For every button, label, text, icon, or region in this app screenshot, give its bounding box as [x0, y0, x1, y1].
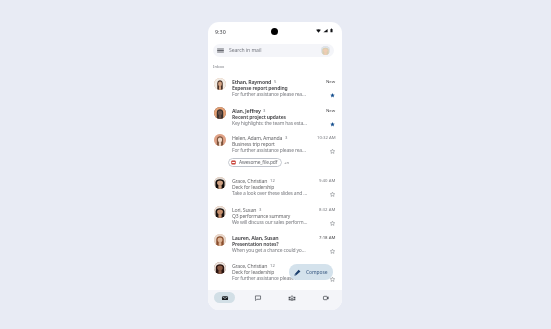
other: Open navigation menu [217, 47, 224, 54]
staticText: Deck for leadership [232, 269, 275, 276]
button[interactable]: Star [329, 148, 336, 155]
button[interactable]: Chat [247, 292, 268, 303]
staticText: We will discuss our sales performan… [232, 219, 308, 226]
button[interactable]: Star [329, 276, 336, 283]
staticText: 5 [274, 79, 277, 85]
staticText: 9:40 AM [319, 177, 336, 183]
button[interactable]: Lauren, Alan, Susan [208, 231, 342, 260]
staticText: 3 [285, 135, 288, 141]
staticText: Compose [306, 269, 328, 276]
button[interactable]: Star [329, 248, 336, 255]
button[interactable]: Open navigation menu [213, 44, 334, 57]
staticText: Lori, Susan [232, 206, 257, 213]
staticText: Presentation notes? [232, 241, 279, 248]
staticText: 8:32 AM [319, 206, 336, 212]
staticText: Q3 performance summary [232, 213, 291, 220]
staticText: 9:30 [215, 28, 226, 35]
button[interactable]: Compose [289, 264, 333, 280]
button[interactable]: Spaces [281, 292, 302, 303]
staticText: Awesome_file.pdf [239, 159, 278, 166]
staticText: Helen, Adam, Amanda [232, 134, 283, 141]
button[interactable]: Star [329, 121, 336, 128]
staticText: Grace, Christian [232, 262, 268, 269]
staticText: 3 [263, 108, 266, 114]
staticText: For further assistance please reach… [232, 275, 308, 282]
staticText: New [326, 107, 336, 113]
button[interactable]: Star [329, 191, 336, 198]
staticText: 12 [270, 178, 275, 184]
button[interactable]: Lori, Susan [208, 203, 342, 232]
staticText: Recent project updates [232, 114, 286, 121]
staticText: Deck for leadership [232, 184, 275, 191]
staticText: Grace, Christian [232, 177, 268, 184]
staticText: Business trip report [232, 141, 275, 148]
staticText: Lauren, Alan, Susan [232, 234, 279, 241]
button[interactable]: Star [329, 220, 336, 227]
button[interactable]: Alan, Jeffrey [208, 104, 342, 133]
staticText: New [326, 78, 336, 84]
staticText: 12 [270, 263, 275, 269]
staticText: Search in mail [229, 47, 262, 54]
staticText: +n [284, 160, 289, 166]
staticText: 3 [259, 207, 262, 213]
button[interactable]: Ethan, Raymond [208, 75, 342, 104]
staticText: Alan, Jeffrey [232, 107, 261, 114]
button[interactable]: Meet [315, 292, 336, 303]
button[interactable]: Star [329, 92, 336, 99]
button[interactable]: Account [321, 46, 330, 55]
staticText: Expense report pending [232, 85, 288, 92]
staticText: For further assistance please reach… [232, 91, 308, 98]
button[interactable]: Awesome_file.pdf [228, 158, 282, 167]
staticText: When you get a chance could you se… [232, 247, 308, 254]
button[interactable]: Grace, Christian [208, 259, 342, 288]
staticText: For further assistance please reach… [232, 147, 308, 154]
staticText: 7:18 AM [319, 234, 336, 240]
staticText: Inbox [213, 64, 225, 70]
staticText: 10:32 AM [317, 134, 336, 140]
button[interactable]: Grace, Christian [208, 174, 342, 203]
button[interactable]: Helen, Adam, Amanda [208, 131, 342, 173]
button[interactable]: Mail [214, 292, 235, 303]
staticText: Key highlights: the team has establi… [232, 120, 308, 127]
staticText: Take a look over these slides and le… [232, 190, 308, 197]
staticText: Ethan, Raymond [232, 78, 272, 85]
